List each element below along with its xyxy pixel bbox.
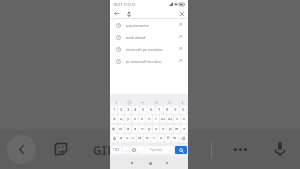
- button[interactable]: Recents: [164, 160, 170, 166]
- other: Insert: [178, 59, 182, 63]
- button[interactable]: е: [139, 115, 145, 123]
- button[interactable]: р: [146, 125, 152, 133]
- button[interactable]: ?123: [111, 146, 122, 154]
- button[interactable]: Keyboard tool 5: [179, 99, 185, 105]
- button[interactable]: д: [167, 125, 173, 133]
- staticText: щ: [168, 116, 172, 122]
- button[interactable]: ы: [118, 125, 124, 133]
- button[interactable]: popular.writer: [110, 19, 188, 31]
- button[interactable]: ю: [172, 134, 178, 142]
- button[interactable]: 3: [125, 106, 131, 114]
- button[interactable]: Keyboard tool 4: [166, 99, 172, 105]
- staticText: pc minecraft launcher: [126, 59, 162, 64]
- staticText: н: [148, 116, 151, 122]
- button[interactable]: а: [132, 125, 138, 133]
- staticText: в: [127, 126, 130, 132]
- button[interactable]: work ahead: [110, 31, 188, 43]
- button[interactable]: з: [174, 115, 180, 123]
- staticText: 18:27: [113, 2, 123, 7]
- staticText: з: [176, 116, 179, 122]
- button[interactable]: г: [153, 115, 159, 123]
- button[interactable]: п: [139, 125, 145, 133]
- button[interactable]: 1: [111, 106, 117, 114]
- button[interactable]: Keyboard tool 2: [139, 99, 145, 105]
- button[interactable]: 5: [140, 106, 147, 114]
- staticText: о: [155, 126, 158, 132]
- button[interactable]: ф: [111, 125, 117, 133]
- staticText: minecraft pe emulator: [126, 47, 163, 52]
- button[interactable]: Keyboard tool 1: [126, 99, 132, 105]
- button[interactable]: ж: [174, 125, 180, 133]
- staticText: ж: [175, 126, 179, 132]
- staticText: и: [146, 135, 149, 141]
- button[interactable]: ,: [123, 146, 129, 154]
- button[interactable]: Voice input: [269, 138, 291, 160]
- button[interactable]: 0: [180, 106, 187, 114]
- staticText: popular.writer: [126, 23, 150, 28]
- button[interactable]: н: [146, 115, 152, 123]
- button[interactable]: х: [181, 115, 187, 123]
- button[interactable]: 4: [132, 106, 139, 114]
- staticText: р: [148, 126, 151, 132]
- button[interactable]: я: [119, 134, 124, 142]
- button[interactable]: щ: [167, 115, 173, 123]
- staticText: ч: [126, 135, 129, 141]
- staticText: й: [113, 116, 116, 122]
- staticText: 4: [134, 107, 137, 113]
- staticText: ф: [112, 126, 116, 132]
- button[interactable]: pc minecraft launcher: [110, 55, 188, 67]
- staticText: х: [183, 116, 186, 122]
- button[interactable]: 7: [156, 106, 163, 114]
- button[interactable]: ц: [118, 115, 124, 123]
- staticText: 2: [120, 107, 123, 113]
- button[interactable]: Back: [7, 135, 36, 164]
- button[interactable]: с: [131, 134, 136, 142]
- button[interactable]: Back: [129, 160, 135, 166]
- staticText: 9: [174, 107, 177, 113]
- button[interactable]: Emoji: [130, 146, 137, 154]
- button[interactable]: в: [125, 125, 131, 133]
- button[interactable]: Back: [112, 9, 121, 18]
- button[interactable]: 8: [164, 106, 171, 114]
- other: Insert: [178, 47, 182, 51]
- button[interactable]: ч: [125, 134, 130, 142]
- staticText: г: [155, 116, 157, 122]
- button[interactable]: ь: [158, 134, 164, 142]
- staticText: ,: [126, 148, 127, 152]
- staticText: GIF: [93, 142, 115, 158]
- button[interactable]: и: [144, 134, 150, 142]
- button[interactable]: Search: [175, 146, 187, 154]
- button[interactable]: т: [151, 134, 157, 142]
- button[interactable]: Keyboard tool 0: [113, 99, 119, 105]
- staticText: э: [183, 126, 186, 132]
- button[interactable]: Русский: [138, 146, 174, 154]
- button[interactable]: м: [137, 134, 143, 142]
- button[interactable]: Backspace: [179, 134, 187, 142]
- button[interactable]: minecraft pe emulator: [110, 43, 188, 55]
- button[interactable]: Home: [147, 160, 153, 166]
- button[interactable]: й: [111, 115, 117, 123]
- button[interactable]: 6: [148, 106, 155, 114]
- button[interactable]: Stickers: [51, 139, 71, 159]
- staticText: я: [120, 135, 123, 141]
- button[interactable]: у: [125, 115, 131, 123]
- staticText: у: [127, 116, 130, 122]
- button[interactable]: Shift: [111, 134, 118, 142]
- button[interactable]: More options: [227, 138, 253, 160]
- staticText: 7: [158, 107, 161, 113]
- staticText: б: [167, 135, 170, 141]
- button[interactable]: к: [132, 115, 138, 123]
- button[interactable]: б: [165, 134, 171, 142]
- button[interactable]: ш: [160, 115, 166, 123]
- button[interactable]: Clear: [177, 9, 186, 18]
- button[interactable]: э: [181, 125, 187, 133]
- button[interactable]: о: [153, 125, 159, 133]
- button[interactable]: Keyboard tool 3: [153, 99, 159, 105]
- staticText: ш: [161, 116, 165, 122]
- button[interactable]: 9: [172, 106, 179, 114]
- button[interactable]: 2: [118, 106, 124, 114]
- button[interactable]: GIF: [93, 142, 115, 158]
- button[interactable]: л: [160, 125, 166, 133]
- staticText: т: [153, 135, 155, 141]
- other: Insert: [178, 35, 182, 39]
